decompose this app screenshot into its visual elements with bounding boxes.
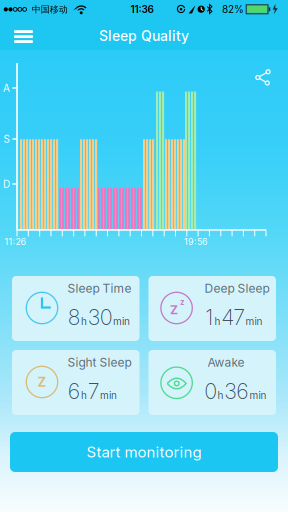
- staticText: h: [214, 315, 220, 327]
- staticText: 中国移动: [32, 4, 68, 15]
- staticText: 1: [205, 305, 213, 330]
- staticText: min: [249, 389, 266, 401]
- staticText: Start monitoring: [86, 443, 201, 461]
- staticText: Z: [170, 303, 178, 317]
- staticText: Sleep Quality: [99, 28, 189, 44]
- staticText: Z: [37, 374, 46, 390]
- staticText: z: [180, 297, 185, 307]
- staticText: 0: [204, 379, 216, 404]
- staticText: 19:56: [184, 236, 208, 247]
- staticText: min: [245, 315, 262, 327]
- staticText: Sight Sleep: [67, 355, 131, 369]
- staticText: 6: [68, 379, 80, 404]
- staticText: min: [100, 389, 117, 401]
- button[interactable]: Start monitoring: [10, 432, 278, 472]
- staticText: 11:26: [4, 236, 26, 247]
- staticText: Sleep Time: [67, 281, 131, 295]
- staticText: D: [3, 178, 10, 190]
- staticText: h: [81, 315, 87, 327]
- staticText: S: [3, 133, 9, 145]
- staticText: Awake: [207, 355, 244, 369]
- staticText: h: [81, 389, 87, 401]
- staticText: h: [217, 389, 223, 401]
- staticText: 11:36: [130, 3, 153, 15]
- staticText: Deep Sleep: [204, 281, 269, 295]
- button[interactable]: Menu: [6, 23, 40, 51]
- staticText: 36: [224, 379, 248, 404]
- staticText: min: [113, 315, 130, 327]
- staticText: 47: [221, 305, 244, 330]
- staticText: 30: [88, 305, 112, 330]
- staticText: 8: [68, 305, 80, 330]
- staticText: 82%: [222, 3, 244, 15]
- button[interactable]: Share: [249, 62, 279, 92]
- staticText: 7: [88, 379, 99, 404]
- staticText: A: [3, 82, 10, 94]
